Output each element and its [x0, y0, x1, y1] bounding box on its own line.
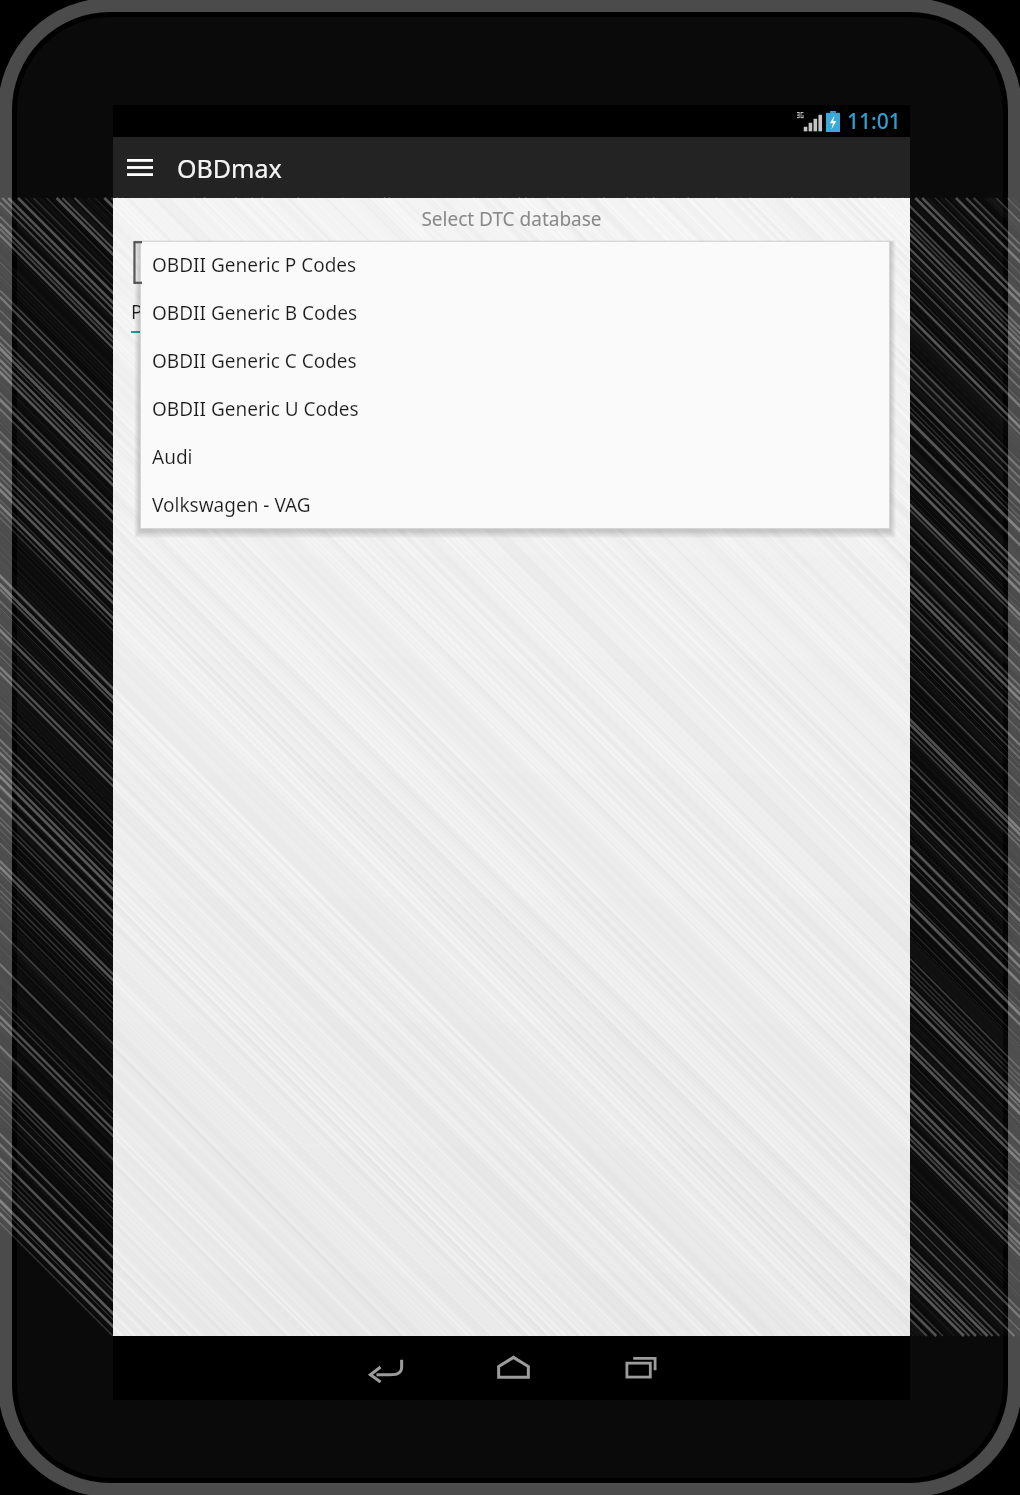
staticText: Select DTC database — [113, 206, 910, 232]
staticText: 11:01 — [847, 107, 901, 136]
button[interactable]: Recent apps — [610, 1342, 672, 1392]
button[interactable]: Open navigation drawer — [113, 137, 167, 198]
staticText: Volkswagen - VAG — [152, 492, 311, 518]
button[interactable]: OBDII Generic U Codes — [140, 385, 890, 433]
staticText: OBDmax — [177, 151, 282, 185]
button[interactable]: Volkswagen - VAG — [140, 481, 890, 529]
staticText: OBDII Generic B Codes — [152, 300, 357, 326]
button[interactable]: Back — [355, 1342, 417, 1392]
staticText: OBDII Generic U Codes — [152, 396, 359, 422]
staticText: P — [131, 299, 143, 325]
staticText: OBDII Generic C Codes — [152, 348, 357, 374]
button[interactable]: DTC database spinner — [131, 291, 165, 333]
button[interactable]: OBDII Generic B Codes — [140, 289, 890, 337]
button[interactable]: OBDII Generic P Codes — [140, 241, 890, 289]
button[interactable]: Audi — [140, 433, 890, 481]
staticText: Audi — [152, 444, 193, 470]
button[interactable]: OBDII Generic C Codes — [140, 337, 890, 385]
button[interactable]: Home — [482, 1342, 544, 1392]
staticText: OBDII Generic P Codes — [152, 252, 357, 278]
